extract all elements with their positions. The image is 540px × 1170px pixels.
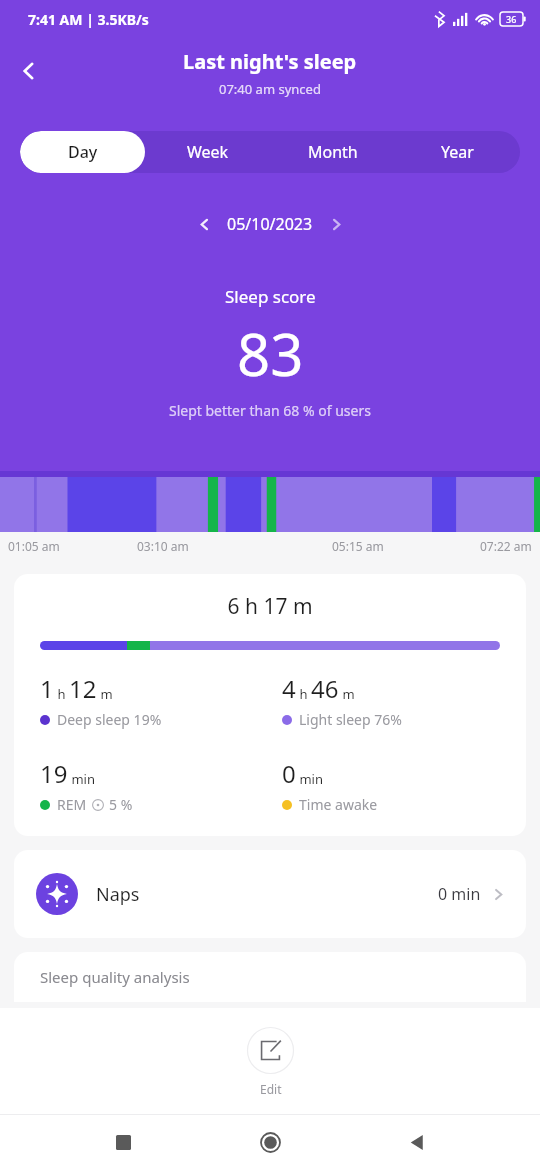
staticText: Sleep score xyxy=(225,285,316,308)
button[interactable]: Recents xyxy=(99,1118,147,1166)
staticText: Deep sleep 19% xyxy=(57,710,162,729)
staticText: Week xyxy=(187,141,229,163)
staticText: 12 xyxy=(69,672,97,705)
staticText: 4 xyxy=(282,672,296,705)
staticText: h xyxy=(54,685,69,703)
button[interactable]: Sleep quality analysis xyxy=(14,952,526,1002)
button[interactable]: Day xyxy=(20,131,145,173)
staticText: 19 xyxy=(40,757,68,790)
staticText: 07:22 am xyxy=(480,538,532,554)
staticText: 01:05 am xyxy=(8,538,60,554)
staticText: 0 xyxy=(282,757,296,790)
staticText: Day xyxy=(68,141,98,163)
button[interactable]: Next day xyxy=(319,207,353,241)
button[interactable]: Back xyxy=(8,50,50,92)
staticText: 5 % xyxy=(109,795,133,814)
staticText: m xyxy=(97,685,113,703)
staticText: 7:41 AM | 3.5KB/s xyxy=(28,10,149,29)
staticText: 83 xyxy=(237,314,304,393)
staticText: min xyxy=(68,770,95,788)
staticText: 6 h 17 m xyxy=(14,592,526,621)
staticText: min xyxy=(296,770,323,788)
button[interactable]: Edit xyxy=(243,1023,298,1101)
button[interactable]: Previous day xyxy=(187,207,221,241)
staticText: h xyxy=(296,685,311,703)
staticText: Year xyxy=(441,141,474,163)
staticText: 1 xyxy=(40,672,54,705)
button[interactable]: Home xyxy=(246,1118,294,1166)
button[interactable]: Back xyxy=(393,1118,441,1166)
staticText: 36 xyxy=(506,13,517,25)
staticText: 0 min xyxy=(438,883,481,905)
staticText: 07:40 am synced xyxy=(219,80,321,98)
button[interactable]: Naps xyxy=(14,850,526,938)
staticText: 03:10 am xyxy=(137,538,189,554)
staticText: 05/10/2023 xyxy=(227,213,313,235)
staticText: Edit xyxy=(260,1081,282,1097)
staticText: Light sleep 76% xyxy=(299,710,402,729)
staticText: Slept better than 68 % of users xyxy=(169,401,371,420)
staticText: 46 xyxy=(311,672,339,705)
button[interactable]: Month xyxy=(270,131,395,173)
staticText: REM xyxy=(57,795,87,814)
staticText: Sleep quality analysis xyxy=(40,967,190,987)
staticText: m xyxy=(339,685,355,703)
staticText: Last night's sleep xyxy=(183,48,357,75)
staticText: Time awake xyxy=(299,795,378,814)
button[interactable]: Week xyxy=(145,131,270,173)
button[interactable]: 6 h 17 m xyxy=(14,574,526,836)
staticText: 05:15 am xyxy=(332,538,384,554)
staticText: Month xyxy=(308,141,358,163)
staticText: Naps xyxy=(96,882,140,907)
button[interactable]: Year xyxy=(395,131,520,173)
